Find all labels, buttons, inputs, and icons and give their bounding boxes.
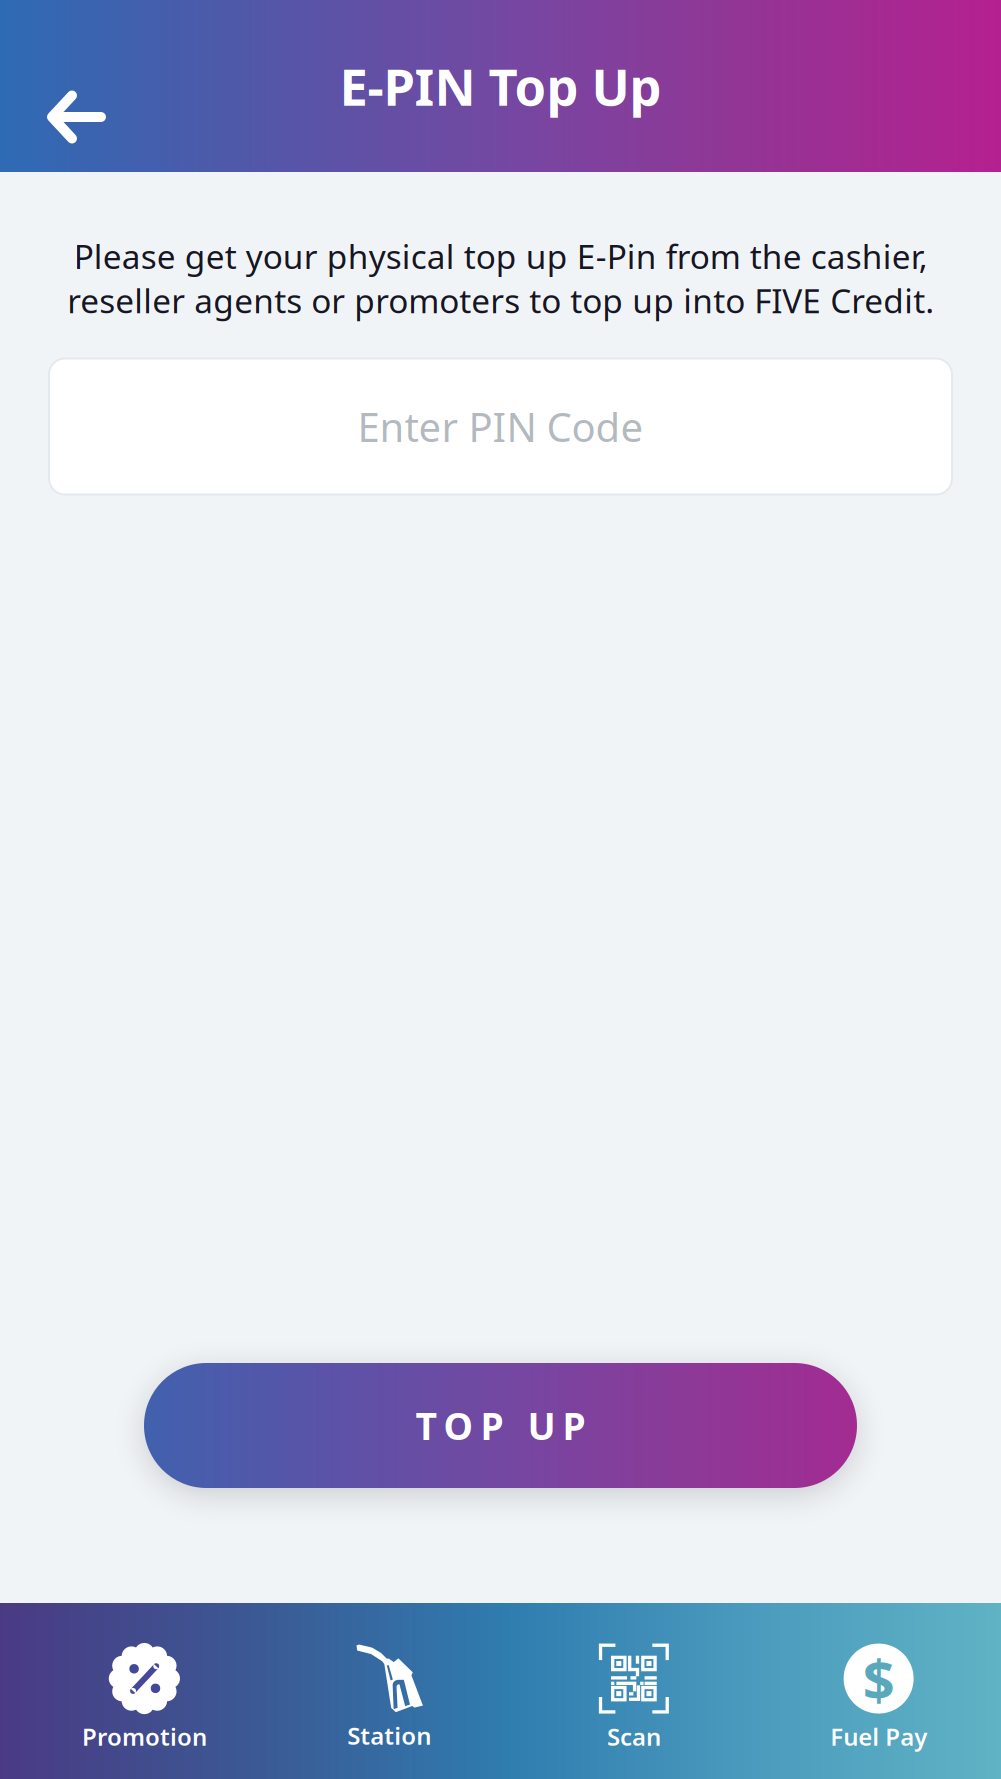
staticText: Please get your physical top up E-Pin fr…	[67, 234, 934, 322]
staticText: $	[863, 1641, 895, 1716]
button[interactable]: Scan	[511, 1594, 756, 1779]
button[interactable]: $	[756, 1594, 1001, 1779]
staticText: E-PIN Top Up	[339, 52, 661, 120]
button[interactable]: Back	[0, 0, 126, 175]
staticText: Fuel Pay	[830, 1721, 927, 1752]
staticText: Enter PIN Code	[357, 400, 643, 453]
staticText: Station	[347, 1720, 431, 1751]
button[interactable]: Promotion	[22, 1594, 267, 1779]
button[interactable]: TOP UP	[144, 1363, 857, 1488]
button[interactable]: Station	[267, 1595, 512, 1779]
staticText: Scan	[607, 1721, 661, 1752]
staticText: TOP UP	[415, 1401, 585, 1450]
staticText: Promotion	[82, 1721, 207, 1752]
